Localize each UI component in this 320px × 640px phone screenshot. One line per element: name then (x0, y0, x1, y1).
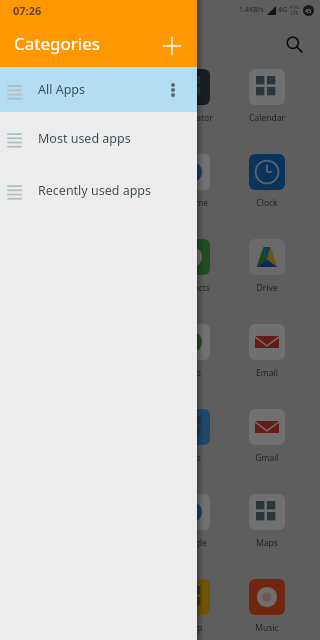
staticText: Email (256, 367, 278, 379)
button[interactable]: Most used apps (0, 112, 197, 164)
staticText: Categories (14, 32, 100, 55)
button[interactable]: Files (164, 406, 220, 464)
button[interactable]: Backup & (14, 66, 70, 124)
staticText: Calculator (172, 112, 213, 124)
button[interactable]: Maps (239, 491, 295, 549)
staticText: Drive (256, 282, 278, 294)
button[interactable]: Drive (239, 236, 295, 294)
button[interactable]: Clock (239, 151, 295, 209)
staticText: Calendar (249, 112, 285, 124)
staticText: All Apps (38, 81, 86, 98)
staticText: Recently used apps (38, 182, 152, 199)
staticText: Files (183, 452, 201, 464)
button[interactable]: Google (164, 491, 220, 549)
staticText: Google (178, 537, 207, 549)
button[interactable]: Calculator (164, 66, 220, 124)
button[interactable]: Music (239, 576, 295, 634)
staticText: Maps (256, 537, 278, 549)
button[interactable]: Camera (14, 151, 70, 209)
button[interactable]: Recently used apps (0, 164, 197, 216)
staticText: Music (255, 622, 279, 634)
button[interactable]: Email (239, 321, 295, 379)
staticText: Contacts (175, 282, 210, 294)
staticText: 4G (278, 5, 288, 15)
staticText: 45 (305, 7, 312, 14)
staticText: 1.4KB/s (239, 5, 264, 15)
button[interactable]: Chrome (164, 151, 220, 209)
button[interactable]: Browser (89, 66, 145, 124)
button[interactable]: All Apps (0, 67, 197, 112)
button[interactable]: Contacts (164, 236, 220, 294)
staticText: Keep (182, 622, 203, 634)
staticText: Chrome (176, 197, 208, 209)
staticText: LTE (291, 10, 299, 16)
staticText: Gmail (255, 452, 279, 464)
staticText: Duo (184, 367, 201, 379)
staticText: 4 Vo (290, 4, 300, 10)
staticText: Most used apps (38, 130, 131, 147)
button[interactable]: Calendar (239, 66, 295, 124)
button[interactable]: Duo (164, 321, 220, 379)
staticText: 07:26 (13, 3, 42, 18)
button[interactable]: Camera (89, 151, 145, 209)
button[interactable]: Search (272, 22, 316, 66)
staticText: Camera (102, 197, 133, 209)
button[interactable]: Gmail (239, 406, 295, 464)
button[interactable]: More options (158, 75, 188, 105)
button[interactable]: Keep (164, 576, 220, 634)
button[interactable]: Add category (152, 26, 192, 66)
staticText: Clock (256, 197, 278, 209)
